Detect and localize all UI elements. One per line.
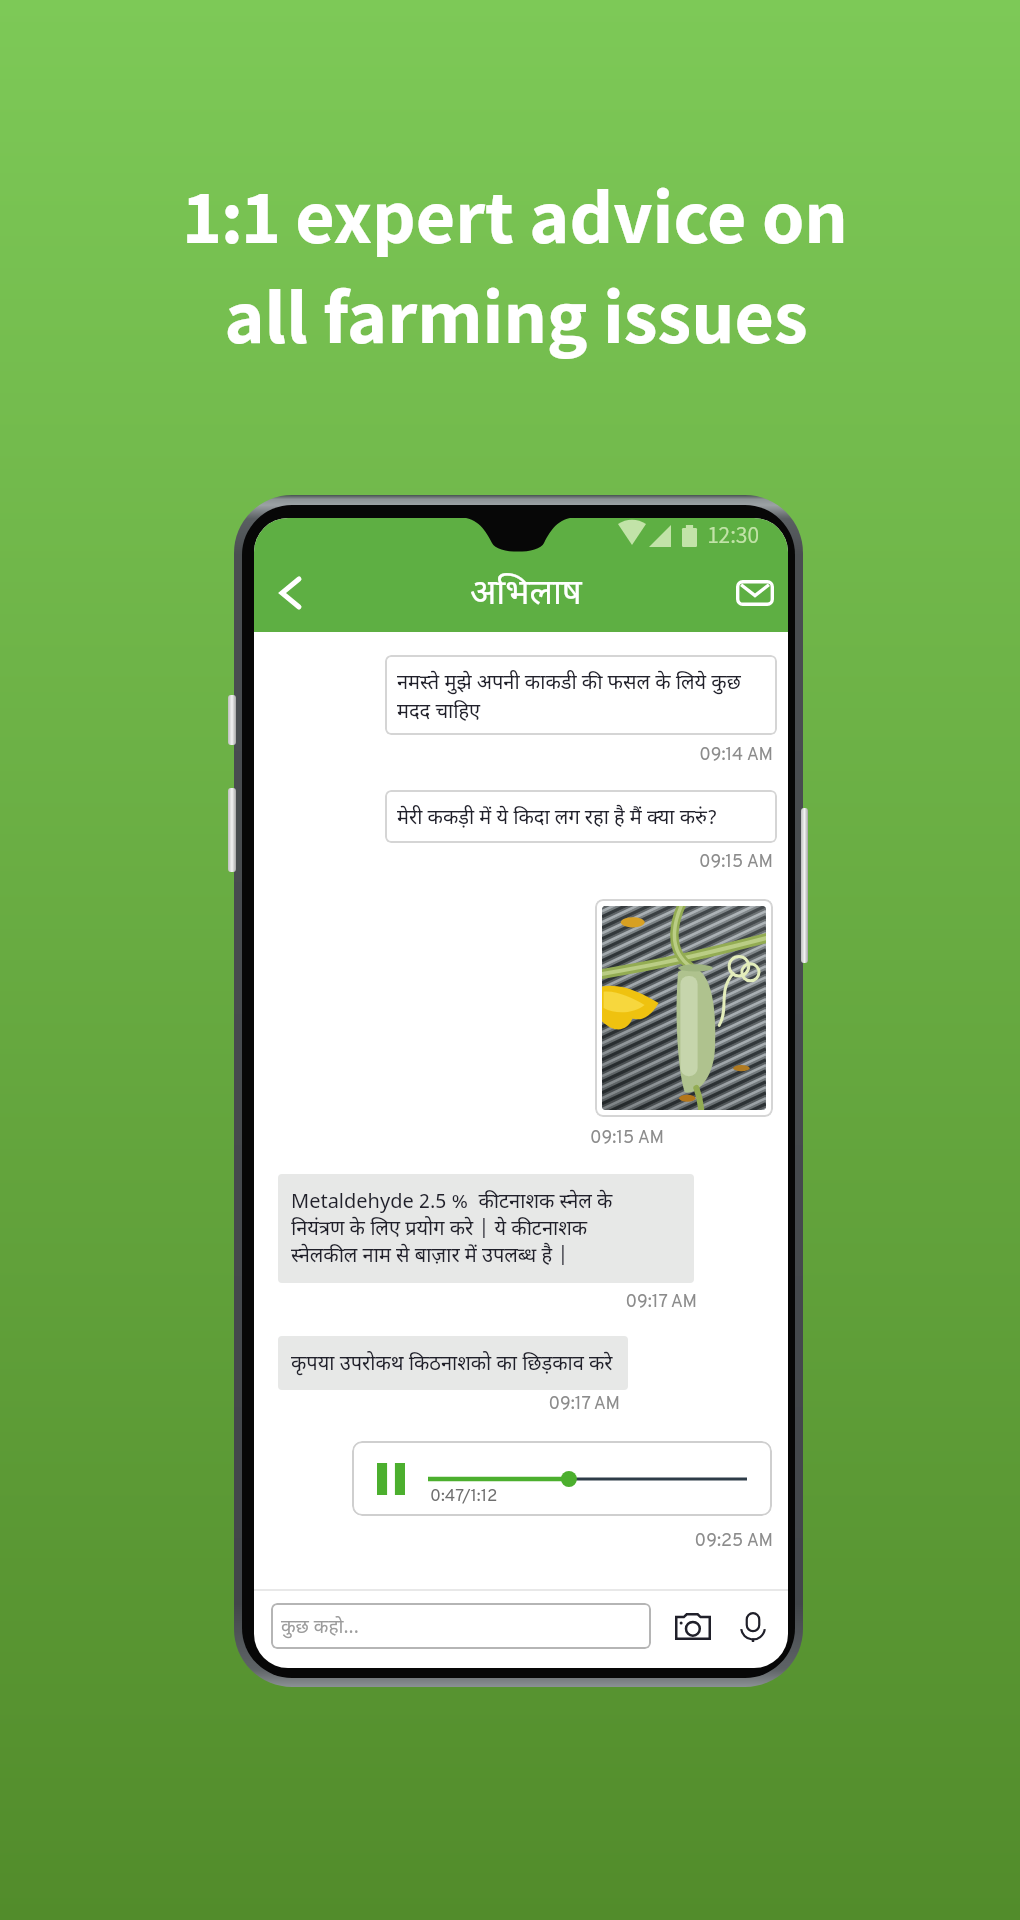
- button[interactable]: [595, 899, 773, 1117]
- staticText: मेरी ककड़ी में ये किदा लग रहा है मैं क्य…: [397, 806, 718, 832]
- staticText: 1:1 expert advice on: [184, 165, 848, 265]
- staticText: 12:30: [708, 519, 759, 550]
- staticText: 09:14 AM: [699, 744, 773, 767]
- staticText: all farming issues: [224, 265, 808, 365]
- staticText: 09:15 AM: [698, 851, 773, 874]
- button[interactable]: Camera: [669, 1602, 717, 1650]
- button[interactable]: Back: [266, 569, 314, 617]
- button[interactable]: Messages: [731, 569, 779, 617]
- staticText: कुछ कहो...: [281, 1616, 359, 1641]
- staticText: अभिलाष: [470, 573, 582, 618]
- button[interactable]: Voice message: [729, 1603, 777, 1651]
- button[interactable]: नमस्ते मुझे अपनी काकडी की फसल के लिये कु…: [385, 655, 777, 735]
- staticText: 09:25 AM: [694, 1530, 773, 1553]
- staticText: 09:15 AM: [589, 1127, 664, 1150]
- button[interactable]: कुछ कहो...: [271, 1603, 651, 1649]
- button[interactable]: मेरी ककड़ी में ये किदा लग रहा है मैं क्य…: [385, 790, 777, 843]
- staticText: नमस्ते मुझे अपनी काकडी की फसल के लिये कु…: [397, 671, 741, 726]
- staticText: 0:47/1:12: [430, 1486, 498, 1508]
- staticText: 09:17 AM: [548, 1393, 620, 1416]
- staticText: Metaldehyde 2.5 % कीटनाशक स्नेल के नियंत…: [291, 1190, 613, 1270]
- button[interactable]: 0:47/1:12: [352, 1441, 772, 1516]
- button[interactable]: कृपया उपरोकथ किठनाशको का छिड़काव करे: [278, 1336, 628, 1390]
- staticText: 09:17 AM: [625, 1291, 697, 1314]
- staticText: कृपया उपरोकथ किठनाशको का छिड़काव करे: [291, 1352, 613, 1378]
- button[interactable]: Metaldehyde 2.5 % कीटनाशक स्नेल के नियंत…: [278, 1174, 694, 1283]
